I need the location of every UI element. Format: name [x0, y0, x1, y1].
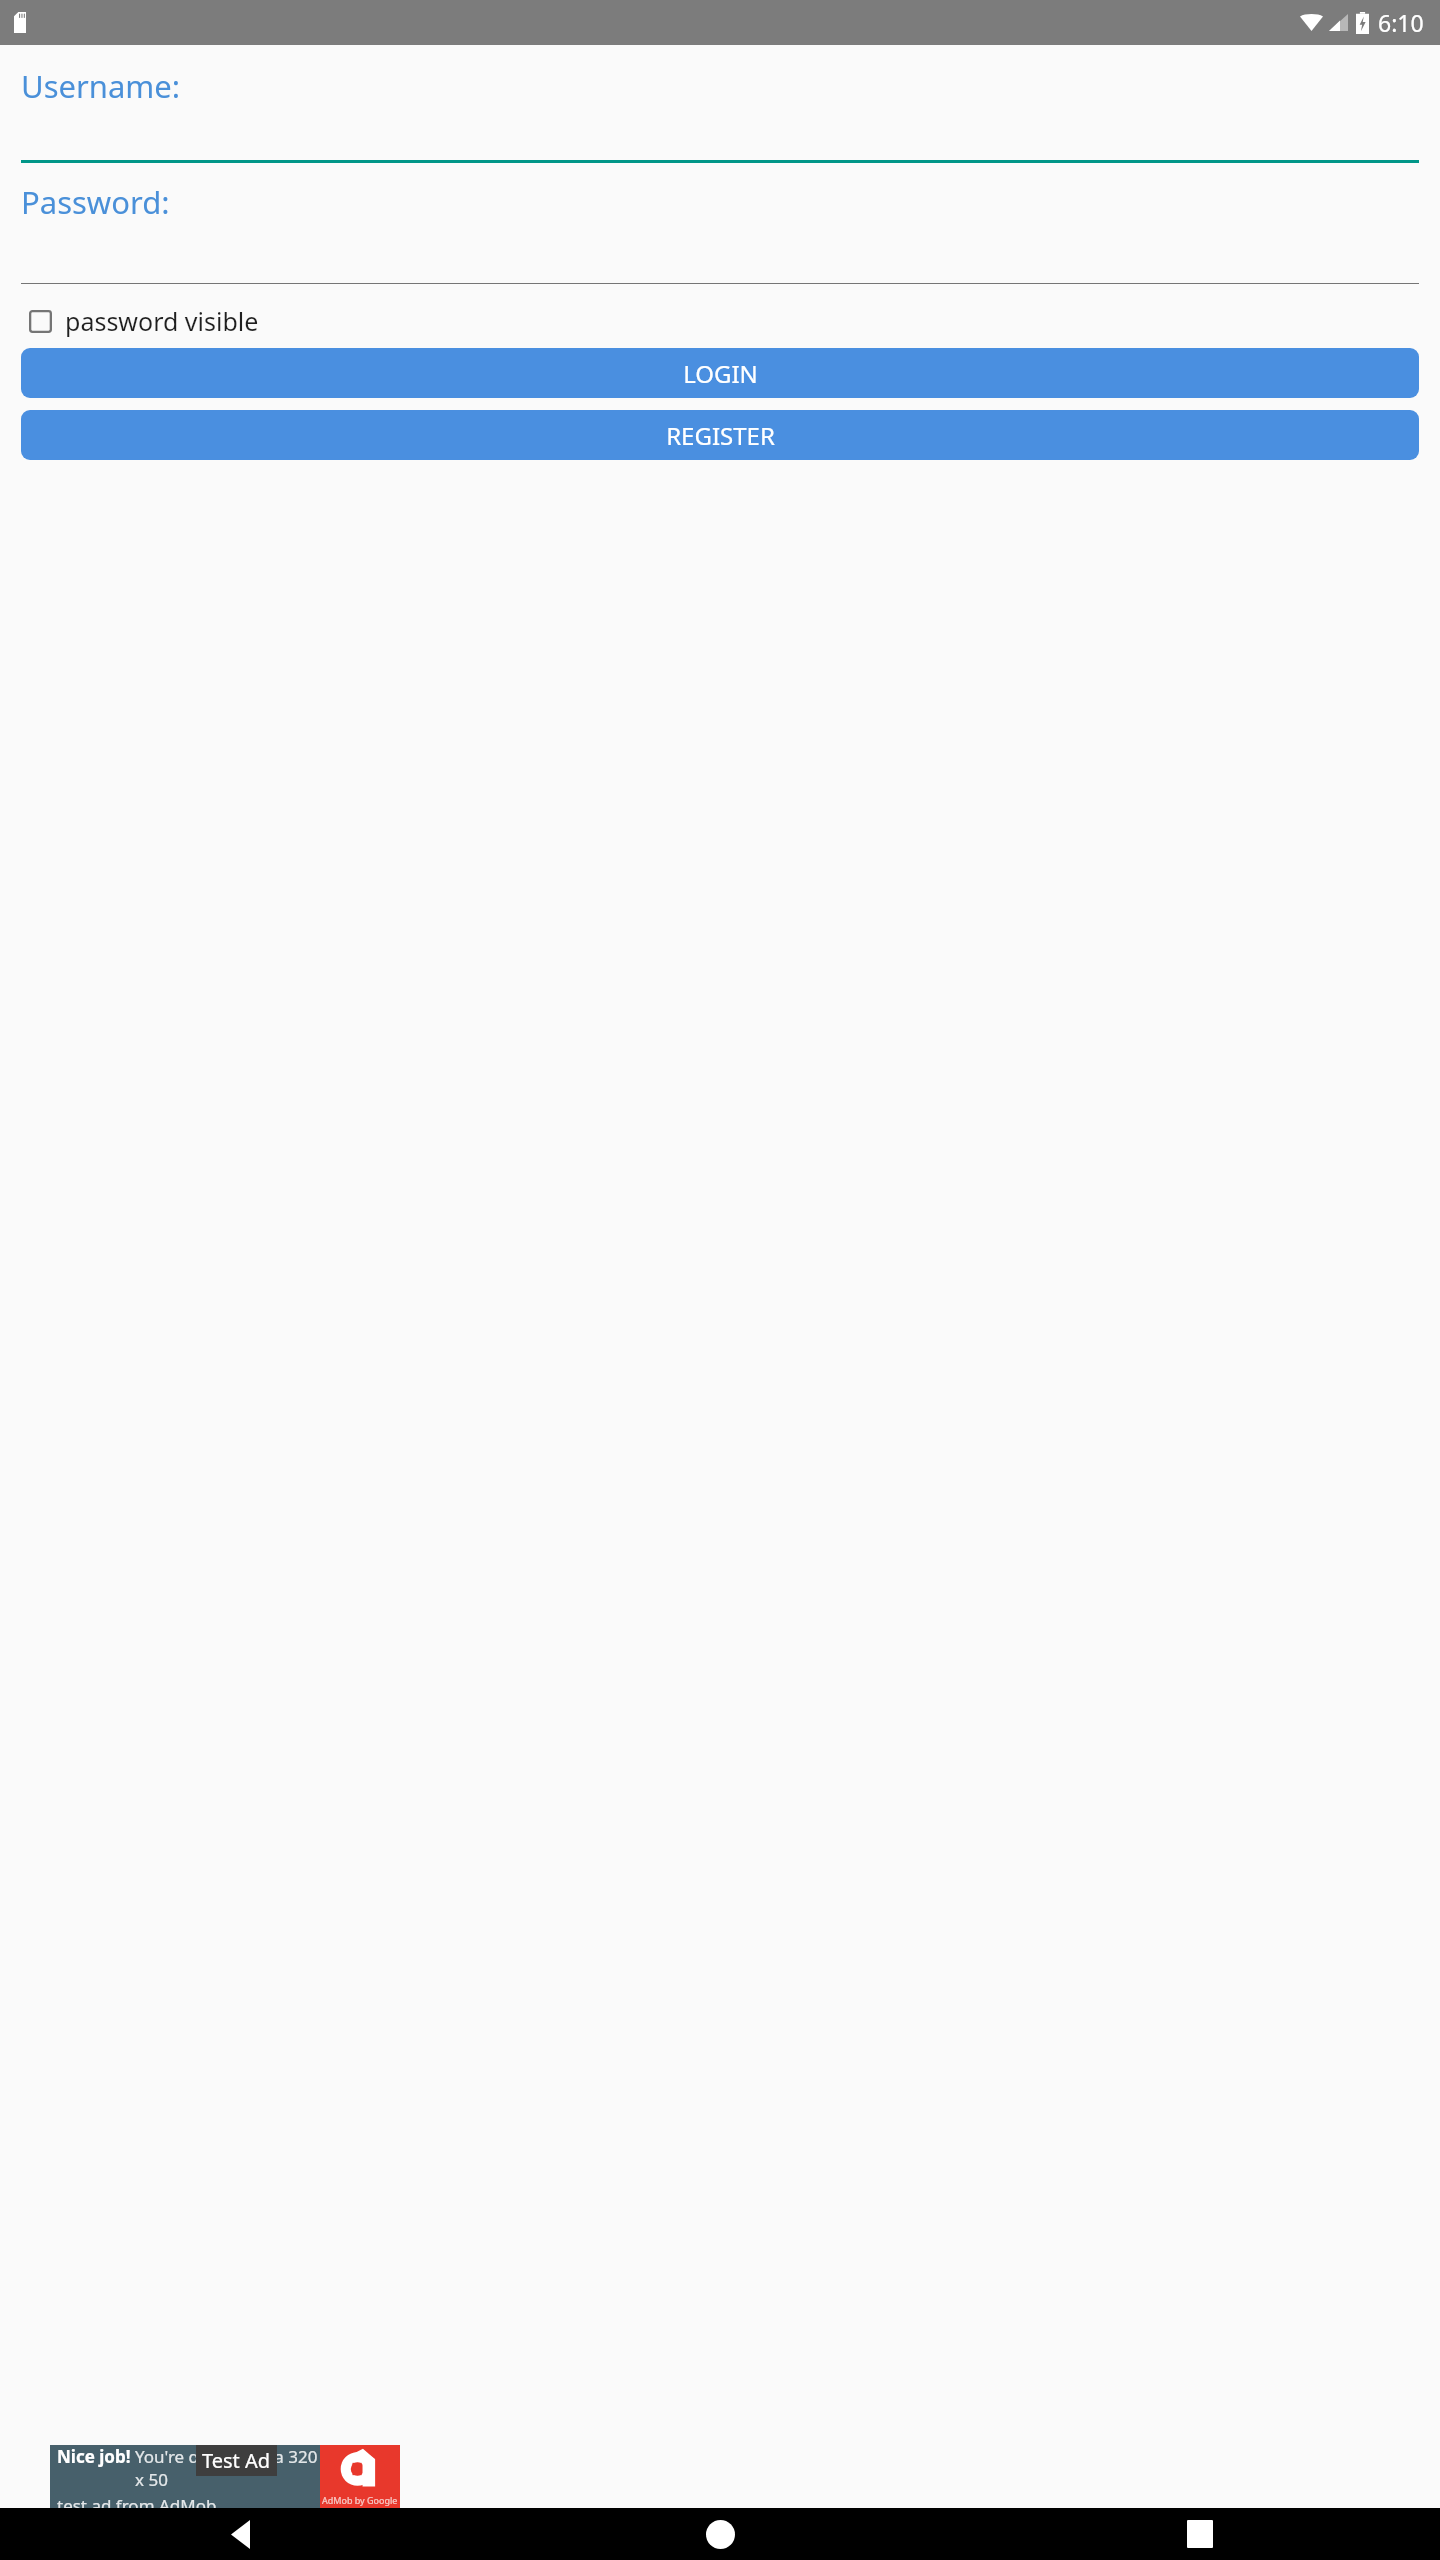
- button[interactable]: [21, 155, 1419, 163]
- staticText: 6:10: [1378, 7, 1424, 38]
- staticText: Nice job!: [57, 2445, 135, 2468]
- staticText: Password:: [21, 181, 170, 223]
- staticText: AdMob by Google: [322, 2494, 398, 2506]
- button[interactable]: Recent apps: [960, 2508, 1440, 2560]
- button[interactable]: Back: [0, 2508, 480, 2560]
- button[interactable]: LOGIN: [21, 348, 1419, 398]
- button[interactable]: password visible: [21, 300, 269, 342]
- button[interactable]: Nice job!: [50, 2445, 400, 2508]
- button[interactable]: REGISTER: [21, 410, 1419, 460]
- button[interactable]: Home: [480, 2508, 960, 2560]
- staticText: REGISTER: [666, 419, 775, 452]
- button[interactable]: [21, 278, 1419, 284]
- button[interactable]: Test Ad: [196, 2445, 277, 2476]
- staticText: Test Ad: [202, 2447, 271, 2474]
- staticText: test ad from AdMob.: [57, 2494, 221, 2508]
- staticText: password visible: [65, 304, 259, 338]
- staticText: You're displaying a 320 x 50: [135, 2445, 320, 2491]
- staticText: LOGIN: [683, 357, 758, 390]
- staticText: Username:: [21, 65, 181, 107]
